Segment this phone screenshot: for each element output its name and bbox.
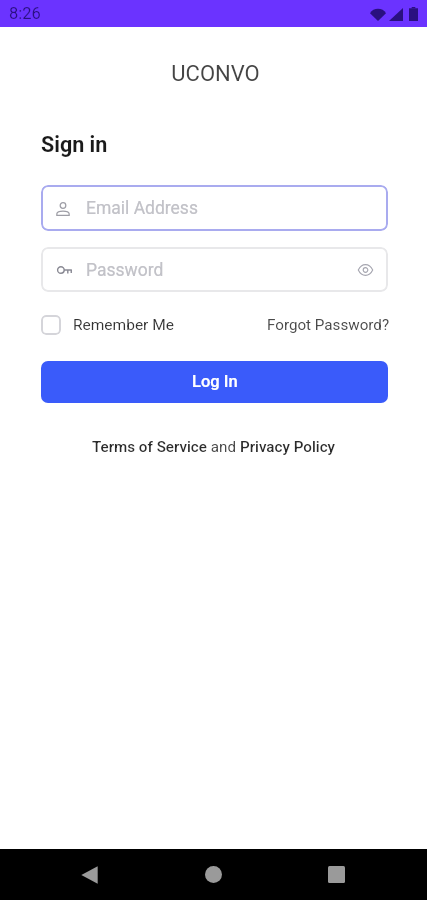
staticText: and (207, 438, 240, 456)
button[interactable]: Privacy Policy (240, 438, 336, 456)
staticText: UCONVO (2, 61, 427, 87)
button[interactable]: Home (185, 849, 242, 900)
staticText: Password (86, 260, 164, 281)
button[interactable]: Show password (350, 255, 380, 285)
button[interactable]: Log In (41, 361, 388, 403)
staticText: Sign in (41, 132, 108, 157)
button[interactable]: Recent apps (308, 849, 365, 900)
button[interactable]: Terms of Service (92, 438, 207, 456)
button[interactable]: Forgot Password? (267, 316, 390, 334)
staticText: Remember Me (73, 316, 174, 334)
staticText: Log In (192, 372, 238, 391)
button[interactable]: Back (61, 849, 118, 900)
button[interactable]: Remember Me (41, 315, 174, 335)
button[interactable]: Password (41, 247, 388, 292)
button[interactable]: Email Address (41, 185, 388, 231)
staticText: Email Address (86, 198, 198, 219)
staticText: 8:26 (9, 4, 41, 23)
